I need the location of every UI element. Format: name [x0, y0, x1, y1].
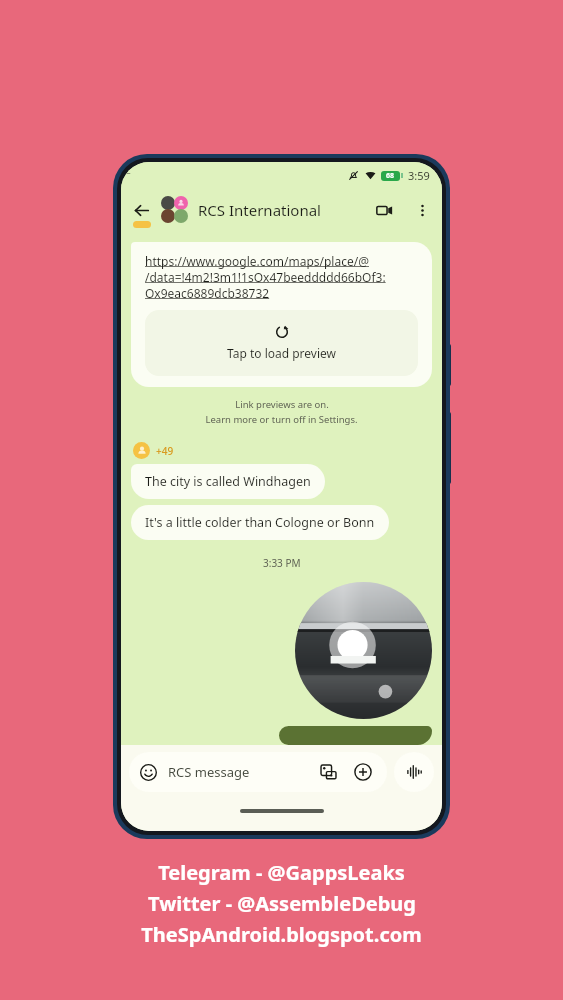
- staticText: /data=!4m2!3m1!1sOx47beeddddd66bOf3:: [145, 269, 386, 285]
- staticText: RCS message: [168, 763, 250, 781]
- staticText: +49: [156, 444, 174, 458]
- button[interactable]: RCS message: [129, 752, 387, 792]
- staticText: 3:33 PM: [263, 556, 301, 570]
- staticText: The city is called Windhagen: [145, 473, 311, 490]
- button[interactable]: It's a little colder than Cologne or Bon…: [131, 505, 389, 540]
- staticText: >_: [121, 162, 131, 174]
- button[interactable]: Group avatar: [161, 196, 189, 224]
- staticText: Twitter - @AssembleDebug: [148, 890, 416, 917]
- staticText: Tap to load preview: [227, 345, 337, 361]
- staticText: 3:59: [408, 168, 430, 183]
- button[interactable]: Tap to load preview: [145, 310, 418, 376]
- staticText: TheSpAndroid.blogspot.com: [141, 921, 422, 948]
- staticText: Telegram - @GappsLeaks: [158, 859, 405, 886]
- button[interactable]: https://www.google.com/maps/place/@: [131, 242, 432, 387]
- staticText: Link previews are on.: [235, 398, 329, 411]
- staticText: 68: [386, 171, 395, 181]
- staticText: Ox9eac6889dcb38732: [145, 285, 270, 301]
- button[interactable]: Voice message: [394, 752, 434, 792]
- button[interactable]: Gallery: [315, 759, 341, 785]
- button[interactable]: More options: [404, 192, 440, 228]
- button[interactable]: Back: [121, 190, 161, 230]
- button[interactable]: The city is called Windhagen: [131, 464, 325, 499]
- staticText: Learn more or turn off in Settings.: [205, 413, 358, 426]
- button[interactable]: Video call: [364, 190, 404, 230]
- button[interactable]: Photo: [295, 582, 432, 719]
- button[interactable]: Add attachment: [350, 759, 376, 785]
- staticText: RCS International: [198, 200, 321, 220]
- staticText: https://www.google.com/maps/place/@: [145, 253, 369, 269]
- staticText: It's a little colder than Cologne or Bon…: [145, 514, 375, 531]
- button[interactable]: Oops... Wrong group: [279, 726, 432, 745]
